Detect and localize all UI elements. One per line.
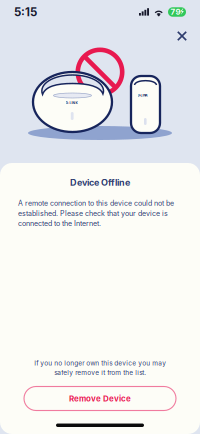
staticText: 79: [170, 7, 180, 17]
staticText: If you no longer own this device you may…: [34, 359, 166, 376]
staticText: D-LINK: [137, 93, 147, 97]
staticText: Device Offline: [70, 177, 130, 188]
button[interactable]: Remove Device: [24, 386, 176, 410]
staticText: D-LINK: [65, 101, 77, 105]
staticText: 5:15: [14, 5, 37, 19]
staticText: A remote connection to this device could…: [18, 199, 174, 228]
staticText: Remove Device: [69, 394, 131, 403]
button[interactable]: Close: [170, 24, 194, 48]
